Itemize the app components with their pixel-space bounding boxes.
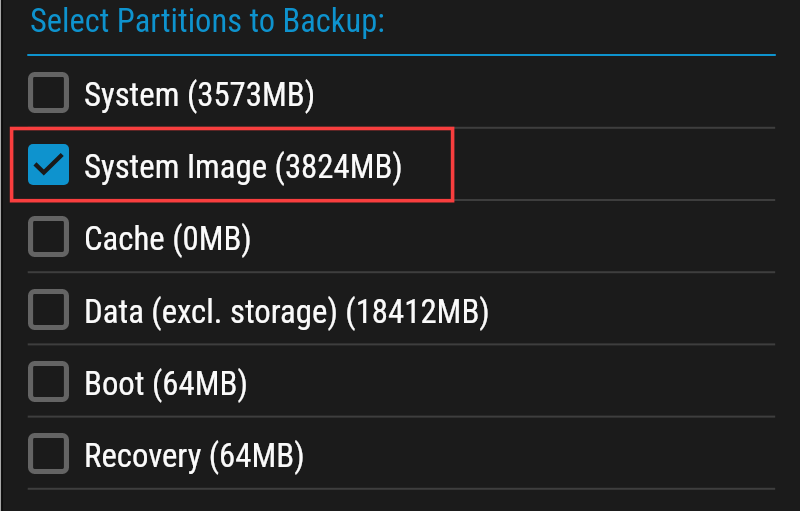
button[interactable]: Not selected: Data (excl. storage) (1841… xyxy=(0,273,800,344)
staticText: Cache (0MB) xyxy=(84,220,252,258)
staticText: System Image (3824MB) xyxy=(84,148,403,186)
staticText: System (3573MB) xyxy=(84,76,316,114)
button[interactable]: Selected: System Image (3824MB) xyxy=(28,144,69,185)
button[interactable]: Not selected: Data (excl. storage) (1841… xyxy=(28,289,69,330)
staticText: Recovery (64MB) xyxy=(84,437,305,475)
button[interactable]: Not selected: Boot (64MB) xyxy=(28,361,69,402)
button[interactable]: Not selected: Cache (0MB) xyxy=(0,200,800,271)
button[interactable]: Not selected: System (3573MB) xyxy=(28,72,69,113)
button[interactable]: Selected: System Image (3824MB) xyxy=(0,128,800,199)
staticText: Data (excl. storage) (18412MB) xyxy=(84,293,490,331)
button[interactable]: Select Partitions to Backup: xyxy=(0,0,800,54)
staticText: Select Partitions to Backup: xyxy=(30,2,385,40)
button[interactable]: Not selected: Boot (64MB) xyxy=(0,345,800,416)
button[interactable]: Not selected: Recovery (64MB) xyxy=(28,433,69,474)
button[interactable]: Not selected: Cache (0MB) xyxy=(28,216,69,257)
staticText: Boot (64MB) xyxy=(84,365,248,403)
button[interactable]: Not selected: Recovery (64MB) xyxy=(0,417,800,488)
button[interactable]: Not selected: System (3573MB) xyxy=(0,56,800,127)
